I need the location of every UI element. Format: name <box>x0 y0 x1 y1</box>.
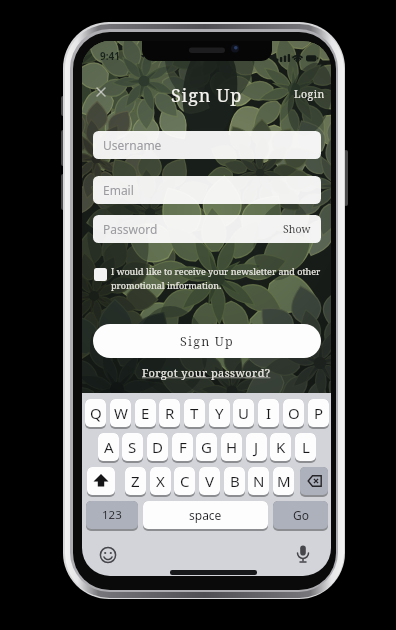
button[interactable]: D <box>147 433 168 463</box>
button[interactable]: P <box>308 399 329 429</box>
button[interactable]: Z <box>125 467 146 497</box>
staticText: D <box>152 437 163 457</box>
button[interactable]: W <box>110 399 131 429</box>
staticText: Go <box>293 507 309 523</box>
button[interactable]: Login <box>294 87 328 103</box>
button[interactable]: Email <box>93 176 321 204</box>
staticText: Password <box>103 221 158 237</box>
button[interactable]: Show <box>283 222 311 236</box>
staticText: F <box>179 437 187 457</box>
button[interactable] <box>92 83 110 101</box>
staticText: E <box>141 403 150 423</box>
staticText: L <box>302 437 310 457</box>
button[interactable]: N <box>248 467 269 497</box>
staticText: T <box>190 403 199 423</box>
staticText: W <box>114 403 128 423</box>
staticText: Z <box>131 471 140 491</box>
button[interactable]: space <box>143 501 268 531</box>
staticText: G <box>201 437 212 457</box>
button[interactable]: 123 <box>86 501 138 531</box>
button[interactable]: K <box>270 433 291 463</box>
button[interactable] <box>300 467 328 497</box>
button[interactable]: F <box>172 433 193 463</box>
button[interactable]: G <box>196 433 217 463</box>
button[interactable]: O <box>283 399 304 429</box>
staticText: O <box>288 403 300 423</box>
button[interactable]: L <box>295 433 316 463</box>
button[interactable]: Go <box>273 501 328 531</box>
staticText: Login <box>294 87 325 101</box>
button[interactable]: A <box>98 433 119 463</box>
staticText: S <box>128 437 137 457</box>
staticText: A <box>104 437 114 457</box>
staticText: X <box>156 471 165 491</box>
button[interactable]: I would like to receive your newsletter … <box>92 263 322 299</box>
staticText: I would like to receive your newsletter … <box>111 265 321 291</box>
staticText: Username <box>103 137 162 153</box>
staticText: M <box>277 471 291 491</box>
staticText: C <box>180 471 190 491</box>
button[interactable]: E <box>135 399 156 429</box>
staticText: Email <box>103 182 134 198</box>
button[interactable]: M <box>273 467 294 497</box>
staticText: J <box>254 437 259 457</box>
button[interactable]: B <box>224 467 245 497</box>
staticText: B <box>230 471 240 491</box>
button[interactable]: T <box>184 399 205 429</box>
button[interactable]: Password <box>93 215 321 243</box>
button[interactable]: U <box>233 399 254 429</box>
staticText: space <box>189 507 222 523</box>
button[interactable]: J <box>246 433 267 463</box>
staticText: Sign Up <box>180 333 234 350</box>
button[interactable]: Sign Up <box>93 324 321 358</box>
button[interactable] <box>87 467 115 497</box>
button[interactable]: S <box>122 433 143 463</box>
button[interactable]: V <box>199 467 220 497</box>
button[interactable]: H <box>221 433 242 463</box>
button[interactable]: Q <box>85 399 106 429</box>
staticText: N <box>253 471 265 491</box>
button[interactable]: Y <box>209 399 230 429</box>
button[interactable]: C <box>174 467 195 497</box>
button[interactable]: Username <box>93 131 321 159</box>
button[interactable]: R <box>159 399 180 429</box>
staticText: Sign Up <box>171 83 243 108</box>
button[interactable]: X <box>150 467 171 497</box>
button[interactable] <box>295 544 311 566</box>
staticText: Y <box>215 403 224 423</box>
staticText: P <box>314 403 324 423</box>
button[interactable]: I <box>258 399 279 429</box>
staticText: 9:41 <box>100 49 120 63</box>
staticText: I <box>266 403 272 423</box>
staticText: Forgot your password? <box>142 365 271 380</box>
staticText: R <box>165 403 175 423</box>
staticText: V <box>205 471 215 491</box>
button[interactable]: Forgot your password? <box>142 365 271 380</box>
staticText: Q <box>90 403 102 423</box>
staticText: Show <box>283 222 311 236</box>
staticText: 123 <box>102 507 122 523</box>
staticText: K <box>276 437 286 457</box>
staticText: U <box>238 403 249 423</box>
button[interactable] <box>99 546 117 564</box>
staticText: H <box>226 437 238 457</box>
